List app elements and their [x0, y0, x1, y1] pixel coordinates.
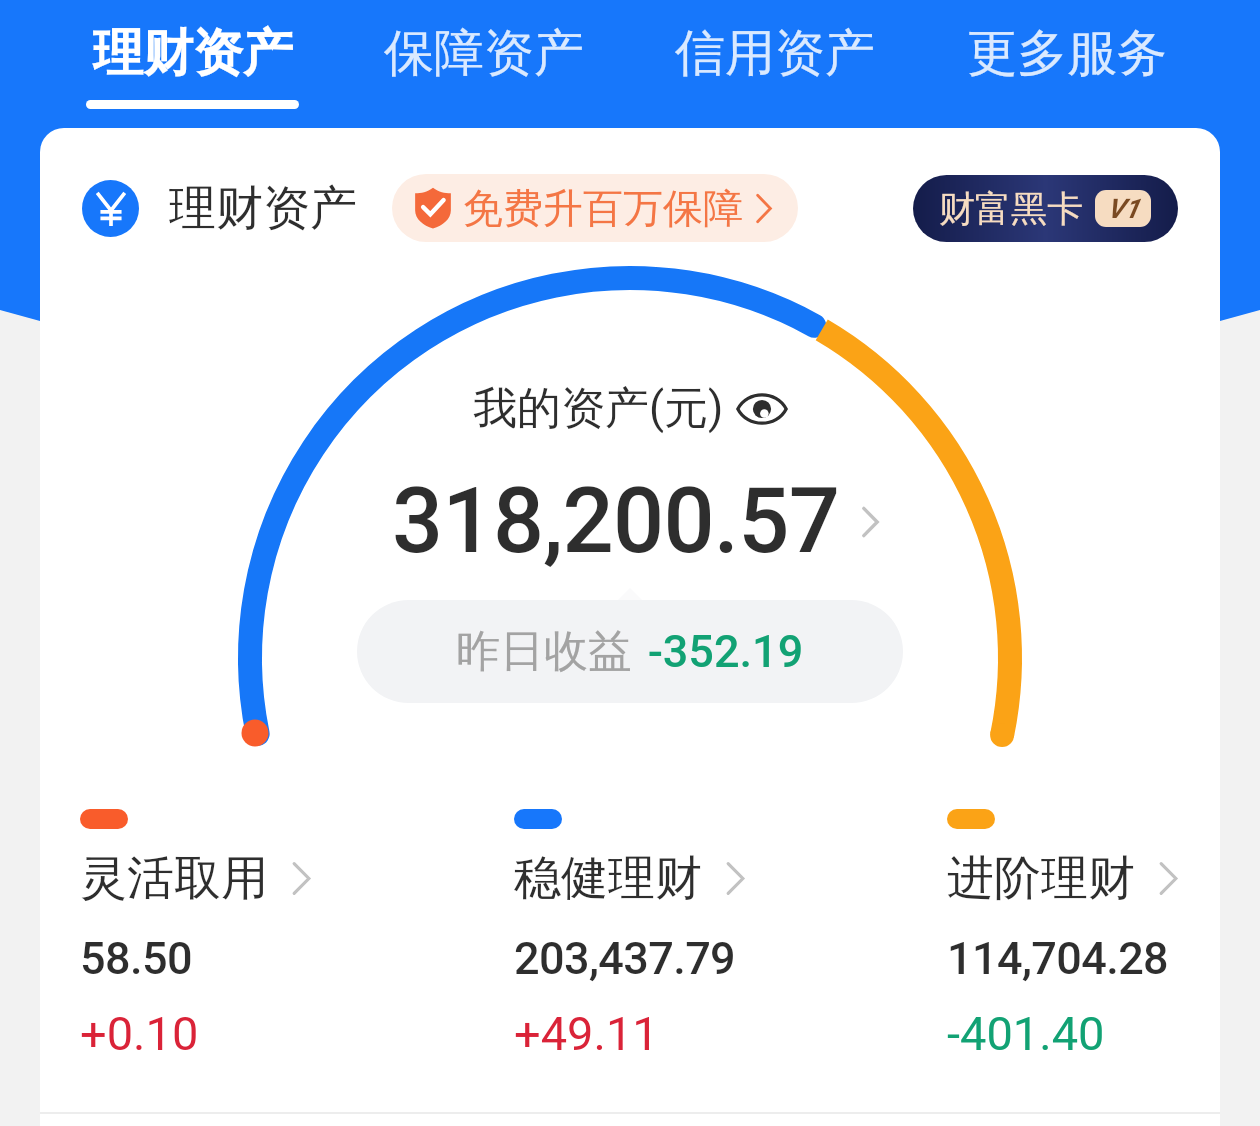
staticText: 114,704.28: [947, 932, 1169, 985]
staticText: 理财资产: [169, 179, 357, 238]
staticText: +49.11: [514, 1006, 659, 1061]
button[interactable]: 保障资产: [338, 0, 629, 128]
button[interactable]: 免费升百万保障: [392, 174, 798, 242]
staticText: 进阶理财: [947, 849, 1135, 908]
staticText: 318,200.57: [392, 469, 840, 574]
staticText: 更多服务: [967, 22, 1167, 85]
staticText: -401.40: [947, 1006, 1105, 1061]
staticText: 免费升百万保障: [463, 183, 743, 233]
staticText: 财富黑卡: [939, 186, 1083, 231]
button[interactable]: 稳健理财: [514, 809, 747, 1061]
other: Wealth: [82, 180, 139, 237]
staticText: 灵活取用: [80, 849, 268, 908]
button[interactable]: 信用资产: [629, 0, 921, 128]
staticText: 我的资产(元): [473, 381, 724, 436]
button[interactable]: 进阶理财: [947, 809, 1180, 1061]
staticText: 理财资产: [93, 22, 293, 85]
button[interactable]: 昨日收益: [357, 600, 903, 703]
button[interactable]: Hide balance: [736, 387, 788, 431]
staticText: 58.50: [80, 932, 192, 985]
button[interactable]: 更多服务: [921, 0, 1213, 128]
staticText: 保障资产: [384, 22, 584, 85]
staticText: 稳健理财: [514, 849, 702, 908]
staticText: 信用资产: [675, 22, 875, 85]
button[interactable]: 理财资产: [47, 0, 338, 128]
button[interactable]: Total assets detail: [392, 469, 881, 574]
button[interactable]: 财富黑卡: [913, 175, 1178, 242]
staticText: 203,437.79: [514, 932, 736, 985]
staticText: +0.10: [80, 1006, 199, 1061]
staticText: -352.19: [648, 625, 804, 678]
staticText: 昨日收益: [456, 624, 632, 679]
button[interactable]: 灵活取用: [80, 809, 313, 1061]
staticText: V1: [1107, 193, 1140, 225]
